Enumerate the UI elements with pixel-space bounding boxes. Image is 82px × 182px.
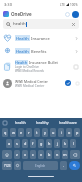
staticText: t	[36, 130, 38, 135]
button[interactable]: Shift	[2, 150, 12, 159]
staticText: OneDrive	[11, 11, 32, 17]
staticText: l	[73, 141, 74, 146]
staticText: ?123	[4, 164, 11, 168]
button[interactable]: k	[62, 139, 68, 148]
button[interactable]: Open suggestion	[73, 35, 79, 41]
button[interactable]: ?123	[2, 161, 12, 170]
button[interactable]: Keyboard settings	[2, 120, 7, 125]
staticText: Health	[16, 36, 29, 41]
staticText: WWE Medical Records	[15, 69, 44, 73]
staticText: d	[24, 141, 27, 146]
staticText: Login to OneDrive	[15, 65, 39, 69]
staticText: i	[61, 130, 62, 135]
staticText: Benefits	[30, 49, 47, 54]
staticText: Insurance Bullet	[28, 60, 58, 65]
staticText: o	[68, 130, 71, 135]
staticText: v	[40, 152, 42, 157]
button[interactable]: Space	[23, 161, 58, 170]
staticText: Insurance	[30, 36, 50, 41]
button[interactable]: o	[66, 128, 72, 137]
staticText: 100%	[70, 3, 78, 7]
staticText: .	[63, 163, 64, 168]
button[interactable]: w	[10, 128, 16, 137]
staticText: health	[15, 120, 26, 125]
button[interactable]: a	[6, 139, 12, 148]
staticText: WWE Medical Center	[15, 84, 45, 88]
staticText: y	[44, 130, 46, 135]
button[interactable]: Health	[0, 31, 82, 44]
button[interactable]: More	[75, 81, 79, 85]
button[interactable]: Clear search	[71, 22, 76, 27]
button[interactable]: m	[62, 150, 68, 159]
staticText: healthcare	[59, 120, 77, 125]
staticText: LTE	[60, 3, 65, 7]
staticText: e	[20, 130, 23, 135]
button[interactable]: s	[14, 139, 20, 148]
staticText: h	[48, 141, 51, 146]
staticText: g	[40, 141, 43, 146]
staticText: z	[16, 152, 18, 157]
button[interactable]: Search	[69, 161, 80, 170]
staticText: a	[8, 141, 11, 146]
button[interactable]: j	[54, 139, 60, 148]
button[interactable]: Sync status	[64, 11, 71, 18]
button[interactable]: u	[50, 128, 56, 137]
button[interactable]: n	[54, 150, 60, 159]
staticText: r	[28, 130, 30, 135]
button[interactable]: b	[46, 150, 52, 159]
button[interactable]: l	[70, 139, 76, 148]
button[interactable]: Open suggestion	[73, 48, 79, 54]
button[interactable]: Period	[60, 161, 67, 170]
button[interactable]: y	[42, 128, 48, 137]
button[interactable]: v	[38, 150, 44, 159]
button[interactable]: x	[22, 150, 28, 159]
staticText: m	[63, 152, 67, 157]
button[interactable]: q	[2, 128, 8, 137]
button[interactable]: p	[74, 128, 80, 137]
button[interactable]: r	[26, 128, 32, 137]
staticText: n	[56, 152, 59, 157]
staticText: f	[32, 141, 34, 146]
button[interactable]: Account	[72, 11, 79, 18]
button[interactable]: c	[30, 150, 36, 159]
staticText: English	[35, 164, 46, 168]
button[interactable]: Health	[0, 57, 82, 76]
staticText: Health	[15, 60, 28, 65]
staticText: s	[16, 141, 18, 146]
staticText: k	[64, 141, 67, 146]
button[interactable]: More options	[73, 64, 79, 70]
staticText: WWE Medical Center	[15, 79, 48, 84]
button[interactable]: Emoji	[14, 161, 21, 170]
staticText: b	[48, 152, 51, 157]
staticText: Health	[16, 49, 29, 54]
staticText: health	[13, 21, 26, 27]
staticText: x	[24, 152, 27, 157]
button[interactable]: d	[22, 139, 28, 148]
button[interactable]: Call	[65, 80, 71, 86]
button[interactable]: health	[3, 19, 79, 29]
button[interactable]: App logo	[3, 11, 9, 17]
button[interactable]: t	[34, 128, 40, 137]
staticText: u	[52, 130, 55, 135]
button[interactable]: i	[58, 128, 64, 137]
button[interactable]: WWE Medical Center	[0, 76, 82, 90]
staticText: p	[76, 130, 79, 135]
button[interactable]: g	[38, 139, 44, 148]
staticText: c	[32, 152, 34, 157]
button[interactable]: z	[14, 150, 20, 159]
button[interactable]: h	[46, 139, 52, 148]
button[interactable]: Backspace	[70, 150, 80, 159]
staticText: healthy	[36, 120, 49, 125]
staticText: w	[12, 130, 15, 135]
button[interactable]: e	[18, 128, 24, 137]
staticText: q	[4, 130, 7, 135]
button[interactable]: f	[30, 139, 36, 148]
staticText: j	[57, 141, 58, 146]
staticText: 3:30	[4, 2, 12, 7]
button[interactable]: Health	[0, 44, 82, 57]
